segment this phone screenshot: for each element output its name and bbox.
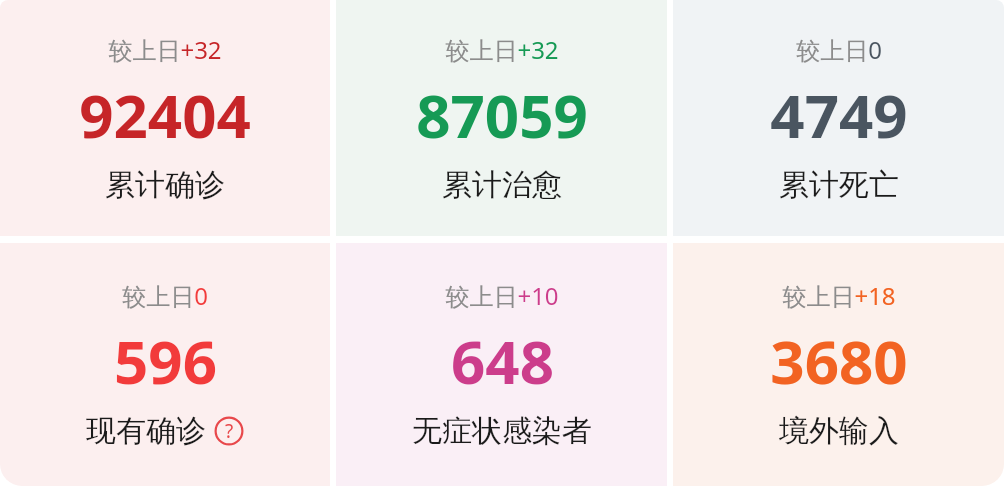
- staticText: 现有确诊: [86, 412, 206, 450]
- button[interactable]: 较上日+18: [673, 243, 1004, 486]
- staticText: 4749: [770, 74, 908, 156]
- staticText: 87059: [416, 74, 588, 156]
- button[interactable]: 较上日0: [0, 243, 330, 486]
- staticText: 较上日+10: [445, 279, 559, 312]
- staticText: 无症状感染者: [412, 412, 592, 450]
- staticText: 较上日+18: [782, 279, 896, 312]
- staticText: 较上日0: [796, 33, 882, 66]
- button[interactable]: 较上日0: [673, 0, 1004, 236]
- staticText: 648: [451, 320, 554, 402]
- staticText: 较上日0: [122, 279, 208, 312]
- staticText: 较上日+32: [445, 33, 559, 66]
- staticText: ?: [225, 418, 234, 444]
- staticText: 596: [114, 320, 217, 402]
- staticText: 较上日+32: [108, 33, 222, 66]
- button[interactable]: 较上日+32: [336, 0, 667, 236]
- staticText: 境外输入: [779, 412, 899, 450]
- staticText: 累计治愈: [442, 166, 562, 204]
- button[interactable]: 现有确诊说明: [214, 416, 244, 446]
- staticText: 累计确诊: [105, 166, 225, 204]
- button[interactable]: 较上日+10: [336, 243, 667, 486]
- staticText: 3680: [770, 320, 908, 402]
- button[interactable]: 较上日+32: [0, 0, 330, 236]
- staticText: 累计死亡: [779, 166, 899, 204]
- staticText: 92404: [79, 74, 251, 156]
